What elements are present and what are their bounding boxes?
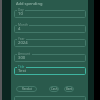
button[interactable]: Test [14, 67, 86, 75]
staticText: Day [18, 8, 24, 12]
button[interactable]: Cash [49, 86, 59, 92]
staticText: 2024 [18, 40, 28, 46]
staticText: Month [18, 23, 28, 27]
button[interactable]: 300 [14, 54, 86, 62]
button[interactable] [14, 96, 86, 100]
staticText: Amount [18, 52, 31, 56]
staticText: Cash [51, 87, 58, 91]
staticText: 10 [18, 11, 23, 17]
staticText: 4 [18, 26, 21, 32]
staticText: Year [18, 37, 25, 41]
button[interactable]: Bank [64, 86, 74, 92]
staticText: Revolut [22, 87, 32, 91]
button[interactable]: 2024 [14, 39, 86, 47]
button[interactable]: Revolut [16, 86, 37, 92]
staticText: Test [18, 68, 26, 74]
staticText: Bank [66, 87, 73, 91]
button[interactable]: 10 [14, 10, 86, 18]
staticText: 300 [18, 55, 26, 61]
staticText: Add spending [16, 1, 43, 6]
button[interactable]: 4 [14, 25, 86, 33]
staticText: Title [18, 65, 25, 69]
